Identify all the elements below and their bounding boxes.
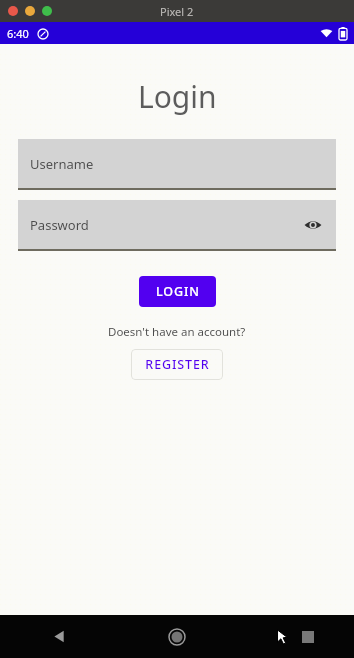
staticText: LOGIN [156, 283, 200, 300]
button[interactable]: Home [118, 615, 236, 658]
button[interactable]: REGISTER [131, 349, 223, 380]
button[interactable]: Back [0, 615, 118, 658]
staticText: Doesn't have an account? [108, 324, 246, 340]
button[interactable]: Password [18, 200, 336, 251]
button[interactable]: Username [18, 139, 336, 190]
button[interactable]: Recent apps [294, 623, 322, 651]
staticText: Username [30, 155, 94, 173]
staticText: REGISTER [145, 356, 210, 373]
staticText: 6:40 [7, 26, 29, 41]
button[interactable]: LOGIN [139, 276, 216, 307]
staticText: Pixel 2 [160, 4, 194, 19]
staticText: Password [30, 216, 89, 234]
button[interactable]: Toggle password visibility [301, 213, 325, 237]
staticText: Login [138, 76, 217, 117]
